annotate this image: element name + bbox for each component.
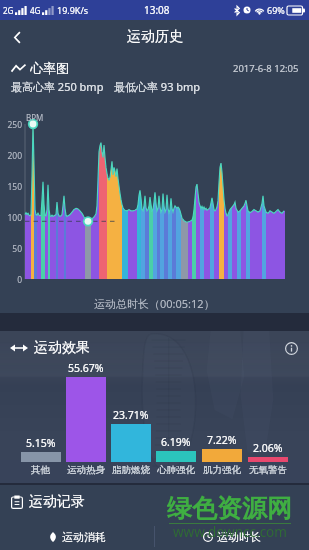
staticText: 心率图 [30,60,69,76]
staticText: 100 [1,212,22,224]
staticText: 7.22% [207,433,237,447]
staticText: 6.19% [161,435,191,449]
staticText: 运动历史 [127,28,183,46]
staticText: 无氧警告 [249,464,287,476]
staticText: 55.67% [68,361,104,375]
staticText: 运动消耗 [62,530,106,544]
staticText: 4G [30,5,41,16]
staticText: 5.15% [26,436,56,450]
button[interactable]: Info [281,338,301,358]
staticText: 69% [267,4,285,16]
staticText: 150 [1,181,22,193]
staticText: 肌力强化 [203,464,241,476]
staticText: 2.06% [253,441,283,455]
button[interactable]: 运动时长 [155,523,309,550]
staticText: 13:08 [144,3,170,17]
staticText: 50 [1,243,22,255]
staticText: 19.9K/s [57,4,89,16]
staticText: www.downcc.com [173,523,287,541]
staticText: 运动记录 [29,493,85,511]
button[interactable]: Back [0,20,34,54]
staticText: 最低心率 93 bmp [114,79,201,94]
staticText: 心肺强化 [157,464,195,476]
staticText: 运动热身 [67,464,105,476]
staticText: 2G [3,5,14,16]
staticText: 运动总时长（00:05:12） [94,296,215,311]
staticText: 最高心率 250 bmp [11,79,104,94]
staticText: 运动效果 [34,339,90,357]
staticText: 绿色资源网 [167,493,292,524]
staticText: 250 [1,119,22,131]
button[interactable]: 运动消耗 [0,523,154,550]
staticText: BPM [26,112,44,123]
staticText: 其他 [31,464,50,476]
staticText: 0 [1,274,22,286]
staticText: 2017-6-8 12:05 [233,62,299,75]
staticText: 23.71% [113,408,149,422]
staticText: 运动时长 [217,530,261,544]
staticText: 200 [1,150,22,162]
staticText: 脂肪燃烧 [112,464,150,476]
